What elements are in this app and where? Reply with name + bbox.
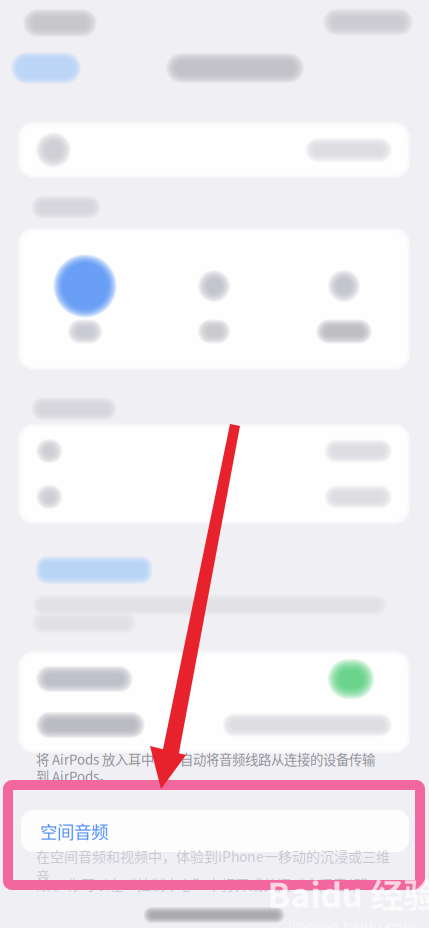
button[interactable] (22, 702, 406, 748)
staticText: Baidu 经验 (267, 869, 429, 917)
staticText: 空间音频 (40, 818, 108, 844)
button[interactable]: Noise cancellation (150, 232, 278, 366)
button[interactable]: Transparency (280, 232, 408, 366)
staticText: 到 AirPods。 (36, 766, 112, 786)
button[interactable] (22, 474, 406, 520)
staticText: 将 AirPods 放入耳中时，自动将音频线路从连接的设备传输 (36, 749, 375, 769)
button[interactable]: Back (3, 46, 89, 90)
staticText: 效 。你可以在“控制中心”中打开或关闭“空间音频”， (36, 874, 389, 894)
button[interactable]: Off (21, 232, 149, 366)
button[interactable] (22, 428, 406, 474)
staticText: 在空间音频和视频中，体验到iPhone一移动的沉浸或三维音 (36, 846, 390, 886)
button[interactable]: 空间音频 (21, 810, 409, 852)
button[interactable] (22, 126, 406, 174)
